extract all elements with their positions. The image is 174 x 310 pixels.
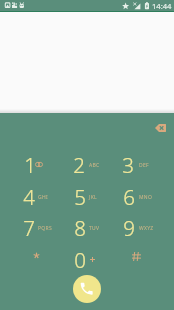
staticText: 7 bbox=[17, 214, 41, 242]
button[interactable]: Backspace bbox=[148, 116, 172, 140]
staticText: JKL bbox=[89, 194, 97, 201]
staticText: 14:44 bbox=[152, 1, 172, 11]
staticText: 4 bbox=[17, 183, 41, 211]
staticText: 8 bbox=[68, 214, 92, 242]
staticText: 0 bbox=[68, 246, 92, 274]
button[interactable]: pound bbox=[112, 244, 160, 274]
button[interactable] bbox=[104, 149, 152, 179]
staticText: 1 bbox=[18, 151, 42, 179]
staticText: PQRS bbox=[38, 225, 52, 232]
staticText: 5 bbox=[68, 183, 92, 211]
staticText: DEF bbox=[139, 162, 149, 169]
staticText: GHI bbox=[38, 194, 48, 201]
button[interactable] bbox=[5, 181, 53, 211]
staticText: ABC bbox=[89, 162, 100, 169]
button[interactable] bbox=[56, 181, 104, 211]
button[interactable] bbox=[56, 244, 104, 274]
staticText: 3 bbox=[116, 151, 140, 179]
button[interactable]: star bbox=[11, 244, 59, 274]
staticText: 2 bbox=[67, 151, 91, 179]
button[interactable] bbox=[105, 213, 153, 243]
button[interactable] bbox=[6, 149, 54, 179]
staticText: WXYZ bbox=[139, 225, 154, 232]
staticText: 6 bbox=[117, 183, 141, 211]
button[interactable] bbox=[5, 213, 53, 243]
staticText: TUV bbox=[89, 225, 100, 232]
staticText: 9 bbox=[117, 214, 141, 242]
button[interactable] bbox=[55, 149, 103, 179]
button[interactable]: Call bbox=[73, 275, 101, 303]
staticText: MNO bbox=[139, 194, 153, 201]
button[interactable] bbox=[56, 213, 104, 243]
button[interactable] bbox=[105, 181, 153, 211]
